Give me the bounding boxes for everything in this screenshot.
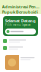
button[interactable] (5, 28, 36, 34)
button[interactable] (5, 55, 36, 70)
button[interactable] (3, 46, 38, 50)
staticText: Selamat Datang (5, 18, 36, 23)
button[interactable] (3, 39, 38, 43)
staticText: Pupuk Bersubsidi (2, 9, 38, 15)
staticText: Pilih menu layanan (5, 23, 31, 27)
staticText: Administrasi Penyuluhan (2, 4, 40, 9)
